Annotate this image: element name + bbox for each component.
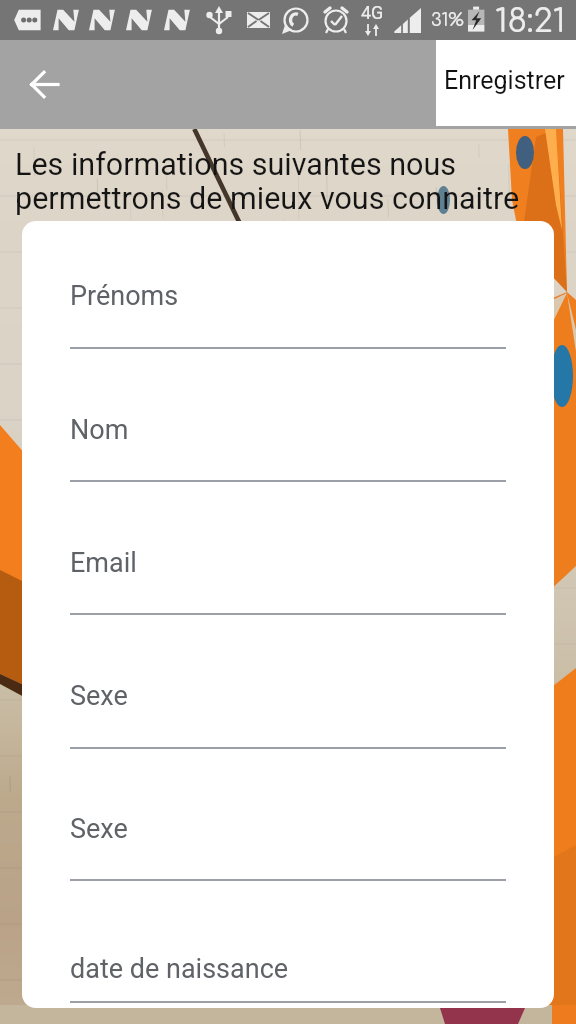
staticText: 31% [431,10,464,30]
button[interactable]: Nom [70,397,506,486]
staticText: Sexe [70,813,128,845]
button[interactable]: date de naissance [70,936,506,1007]
staticText: Enregistrer [444,66,565,95]
button[interactable]: Prénoms [70,263,506,353]
button[interactable]: Sexe [70,796,506,885]
button[interactable]: Back [21,64,69,112]
staticText: date de naissance [70,953,289,985]
staticText: 4G [361,2,384,23]
staticText: Nom [70,414,129,446]
staticText: 18:21 [495,3,566,40]
staticText: Email [70,547,137,579]
button[interactable]: Sexe [70,663,506,753]
staticText: Sexe [70,680,128,712]
staticText: Les informations suivantes nous permettr… [15,147,545,216]
button[interactable]: Enregistrer [436,40,576,126]
staticText: Prénoms [70,280,179,312]
button[interactable]: Email [70,530,506,619]
